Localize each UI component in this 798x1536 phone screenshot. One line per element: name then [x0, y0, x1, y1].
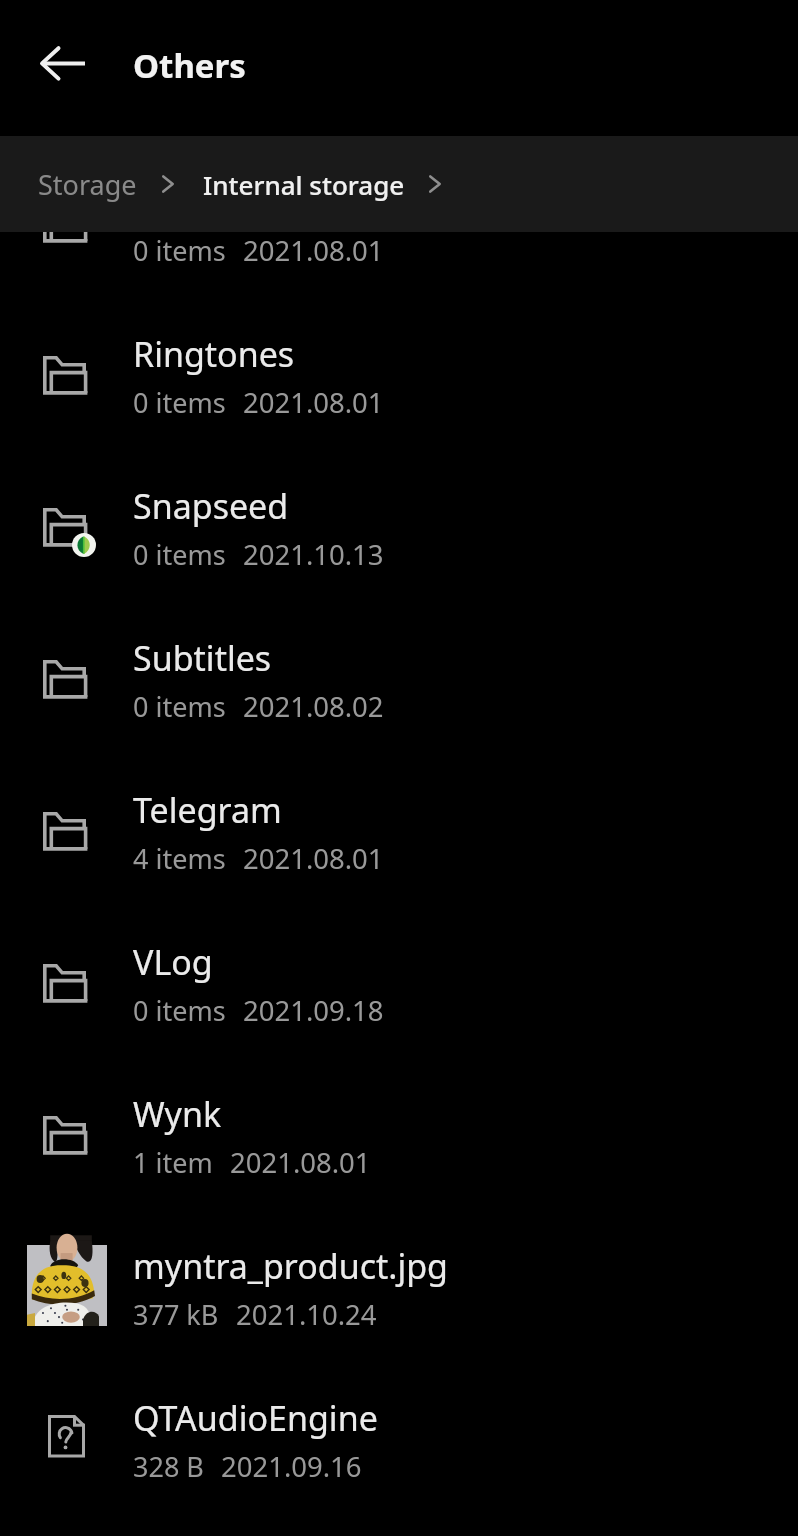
staticText: 0 items: [133, 992, 226, 1029]
staticText: 2021.08.01: [243, 384, 384, 421]
button[interactable]: Storage: [16, 136, 159, 232]
staticText: 377 kB: [133, 1296, 219, 1333]
button[interactable]: Recordings: [0, 232, 798, 298]
staticText: 2021.10.13: [243, 536, 384, 573]
staticText: 0 items: [133, 688, 226, 725]
button[interactable]: Subtitles: [0, 602, 798, 754]
staticText: Storage: [38, 166, 137, 203]
button[interactable]: Ringtones: [0, 298, 798, 450]
button[interactable]: QTAudioEngine: [0, 1362, 798, 1514]
button[interactable]: myntra_product.jpg: [0, 1210, 798, 1362]
button[interactable]: Back: [31, 30, 95, 94]
staticText: 2021.08.01: [230, 1144, 371, 1181]
button[interactable]: Snapseed: [0, 450, 798, 602]
staticText: 0 items: [133, 232, 226, 269]
staticText: Snapseed: [133, 483, 289, 529]
staticText: 2021.09.16: [221, 1448, 362, 1485]
staticText: 0 items: [133, 536, 226, 573]
button[interactable]: Telegram: [0, 754, 798, 906]
staticText: Others: [133, 43, 246, 88]
staticText: Ringtones: [133, 331, 295, 377]
staticText: 2021.08.02: [243, 688, 384, 725]
staticText: Internal storage: [203, 167, 405, 202]
staticText: 2021.08.01: [243, 840, 384, 877]
staticText: Telegram: [133, 787, 282, 833]
staticText: 0 items: [133, 384, 226, 421]
staticText: 2021.08.01: [243, 232, 384, 269]
button[interactable]: Internal storage: [185, 136, 423, 232]
staticText: 4 items: [133, 840, 226, 877]
staticText: 1 item: [133, 1144, 213, 1181]
button[interactable]: Wynk: [0, 1058, 798, 1210]
staticText: 328 B: [133, 1448, 204, 1485]
staticText: VLog: [133, 939, 213, 985]
staticText: Wynk: [133, 1091, 222, 1137]
staticText: 2021.10.24: [236, 1296, 377, 1333]
staticText: Subtitles: [133, 635, 272, 681]
button[interactable]: VLog: [0, 906, 798, 1058]
staticText: myntra_product.jpg: [133, 1243, 449, 1289]
staticText: 2021.09.18: [243, 992, 384, 1029]
staticText: QTAudioEngine: [133, 1395, 378, 1441]
